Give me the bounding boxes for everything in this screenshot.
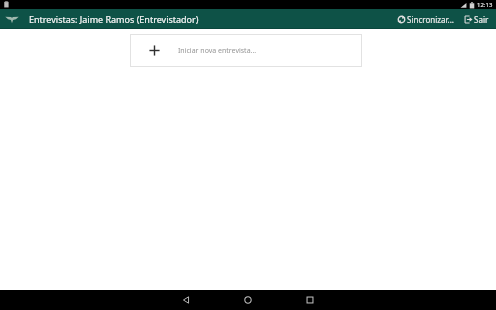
button[interactable]: Back [176,290,196,310]
staticText: Entrevistas: Jaime Ramos (Entrevistador) [29,13,199,25]
staticText: 12:13 [477,1,493,9]
button[interactable]: Sincronizar... [395,12,456,27]
other: App logo [5,14,19,24]
button[interactable]: Recent apps [300,290,320,310]
staticText: Iniciar nova entrevista... [178,46,257,56]
button[interactable]: Iniciar nova entrevista... [130,34,362,67]
staticText: Sincronizar... [407,14,454,25]
staticText: Sair [474,14,489,25]
button[interactable]: Sair [462,12,491,27]
button[interactable]: Home [238,290,258,310]
